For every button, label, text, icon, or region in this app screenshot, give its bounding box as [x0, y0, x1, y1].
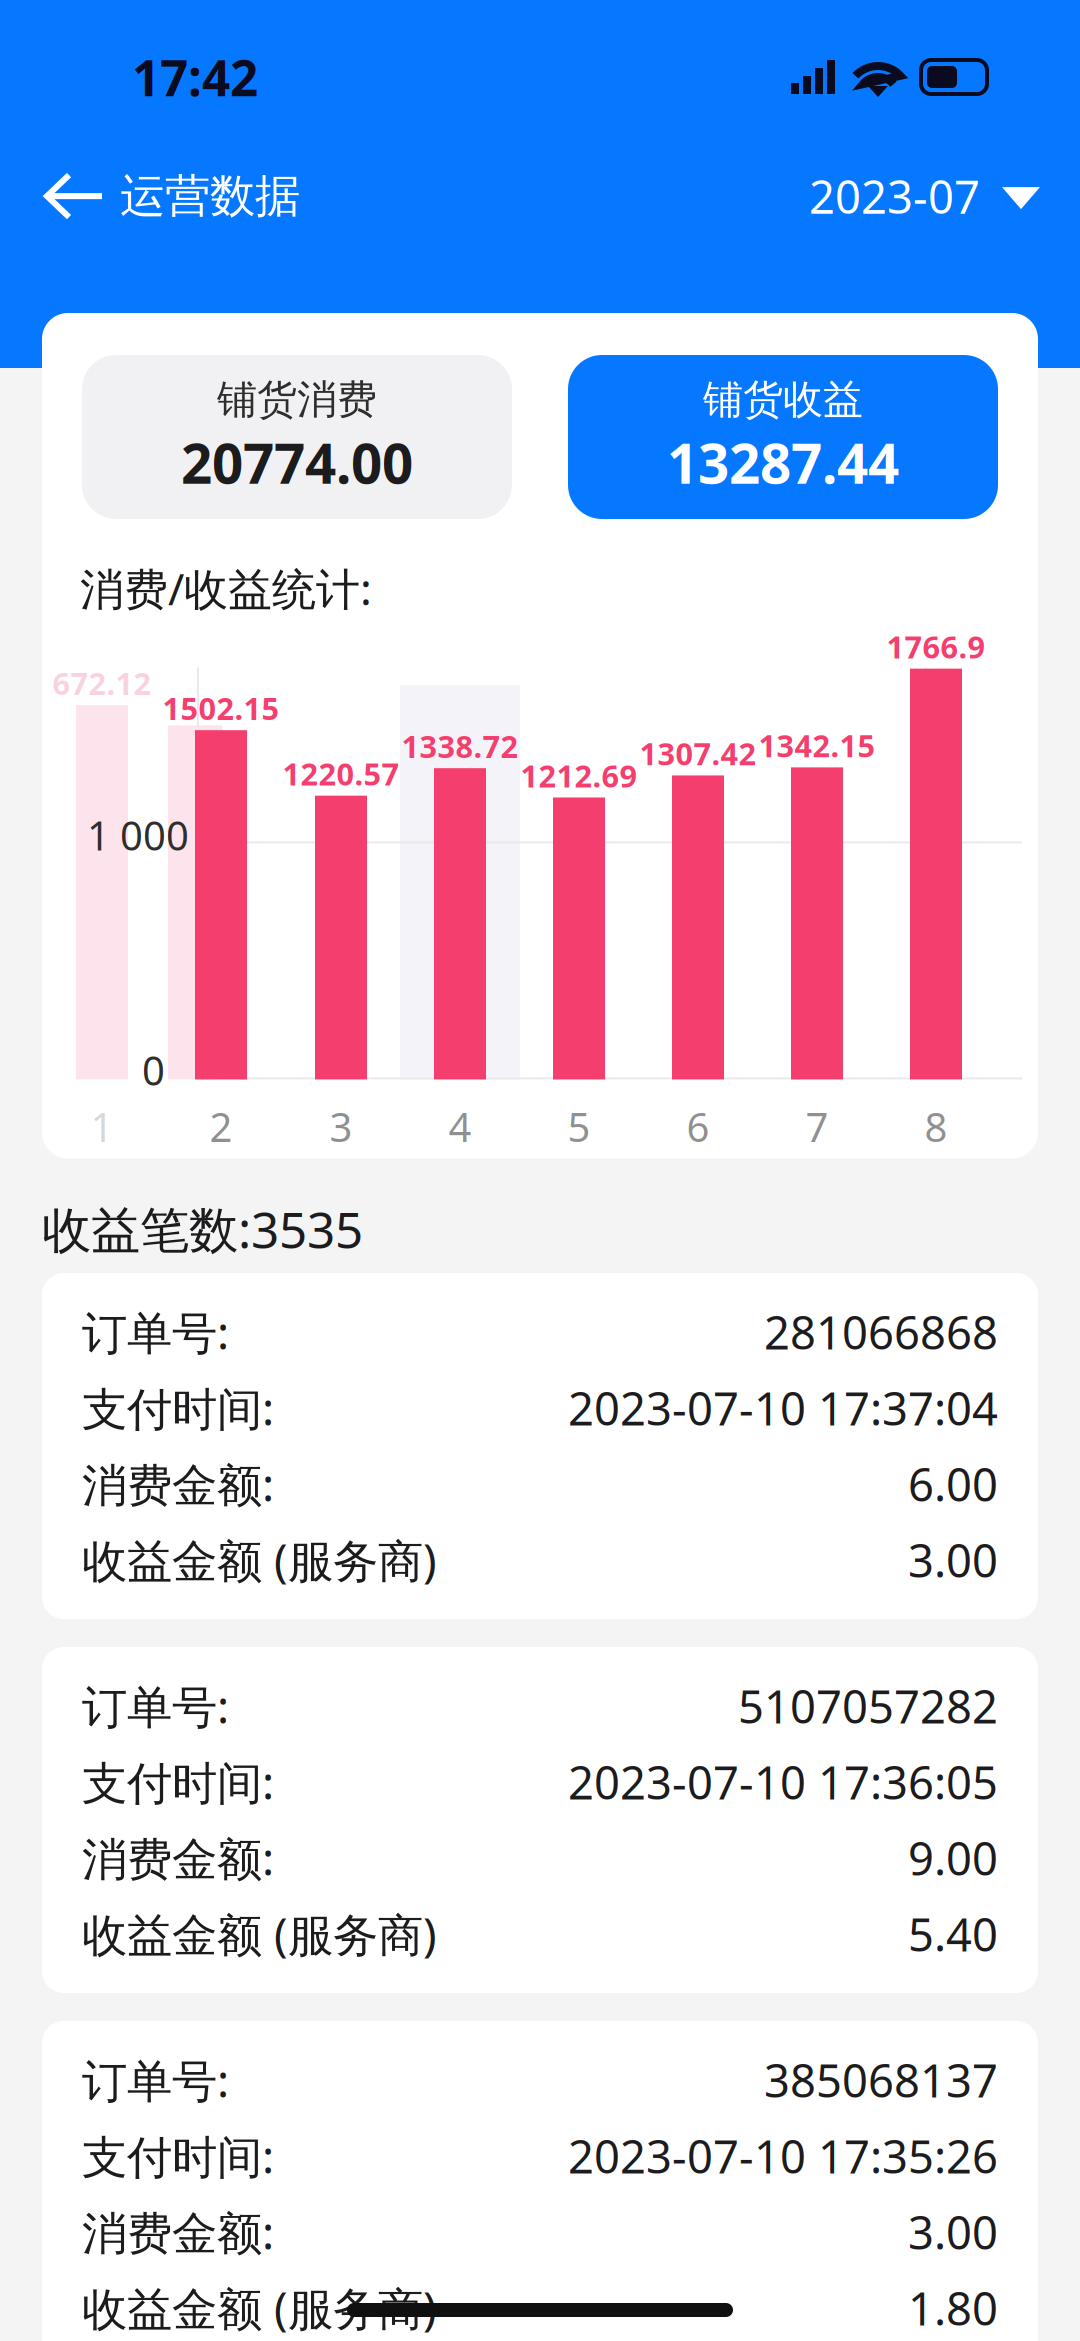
staticText: 消费金额: — [82, 1454, 274, 1514]
staticText: 1 000 — [87, 808, 189, 861]
staticText: 2023-07-10 17:37:04 — [568, 1378, 998, 1438]
staticText: 672.12 — [52, 663, 151, 703]
staticText: 7 — [805, 1100, 828, 1153]
staticText: 支付时间: — [82, 1752, 274, 1812]
staticText: 2 — [209, 1100, 232, 1153]
staticText: 订单号: — [82, 1676, 229, 1736]
staticText: 1.80 — [908, 2278, 998, 2338]
staticText: 1342.15 — [758, 725, 875, 766]
staticText: 4 — [448, 1100, 471, 1153]
staticText: 3 — [329, 1100, 352, 1153]
staticText: 385068137 — [764, 2050, 998, 2110]
staticText: 铺货消费 — [217, 375, 377, 424]
staticText: 1502.15 — [162, 688, 279, 728]
button[interactable]: 订单号: — [42, 1647, 1038, 1993]
staticText: 6 — [686, 1100, 709, 1153]
staticText: 20774.00 — [181, 426, 413, 499]
staticText: 2023-07-10 17:35:26 — [568, 2126, 998, 2186]
staticText: 收益笔数:3535 — [42, 1196, 363, 1261]
staticText: 5 — [567, 1100, 590, 1153]
button[interactable]: 运营数据 — [0, 156, 318, 236]
staticText: 铺货收益 — [703, 375, 863, 424]
button[interactable]: 订单号: — [42, 2021, 1038, 2341]
staticText: 订单号: — [82, 2050, 229, 2110]
button[interactable]: 铺货消费 — [82, 355, 512, 519]
staticText: 支付时间: — [82, 2126, 274, 2186]
staticText: 5.40 — [908, 1904, 998, 1964]
staticText: 2023-07-10 17:36:05 — [568, 1752, 998, 1812]
staticText: 1212.69 — [520, 755, 637, 796]
staticText: 13287.44 — [667, 426, 899, 499]
staticText: 收益金额 (服务商) — [82, 2278, 437, 2338]
staticText: 9.00 — [908, 1828, 998, 1888]
staticText: 消费/收益统计: — [80, 559, 372, 617]
staticText: 281066868 — [764, 1302, 998, 1362]
staticText: 运营数据 — [120, 168, 300, 224]
staticText: 1 — [90, 1100, 113, 1153]
staticText: 8 — [924, 1100, 947, 1153]
staticText: 收益金额 (服务商) — [82, 1904, 437, 1964]
staticText: 1338.72 — [401, 726, 518, 766]
staticText: 订单号: — [82, 1302, 229, 1362]
staticText: 收益金额 (服务商) — [82, 1530, 437, 1590]
staticText: 6.00 — [908, 1454, 998, 1514]
staticText: 2023-07 — [809, 166, 980, 226]
staticText: 1766.9 — [886, 626, 985, 667]
button[interactable]: 2023-07 — [791, 154, 1080, 238]
staticText: 1307.42 — [639, 733, 756, 774]
staticText: 17:42 — [132, 44, 258, 110]
staticText: 0 — [142, 1043, 165, 1096]
staticText: 1220.57 — [282, 753, 399, 794]
button[interactable]: 铺货收益 — [568, 355, 998, 519]
staticText: 消费金额: — [82, 1828, 274, 1888]
staticText: 5107057282 — [738, 1676, 998, 1736]
staticText: 消费金额: — [82, 2202, 274, 2262]
staticText: 支付时间: — [82, 1378, 274, 1438]
staticText: 3.00 — [908, 2202, 998, 2262]
staticText: 3.00 — [908, 1530, 998, 1590]
button[interactable]: 订单号: — [42, 1273, 1038, 1619]
